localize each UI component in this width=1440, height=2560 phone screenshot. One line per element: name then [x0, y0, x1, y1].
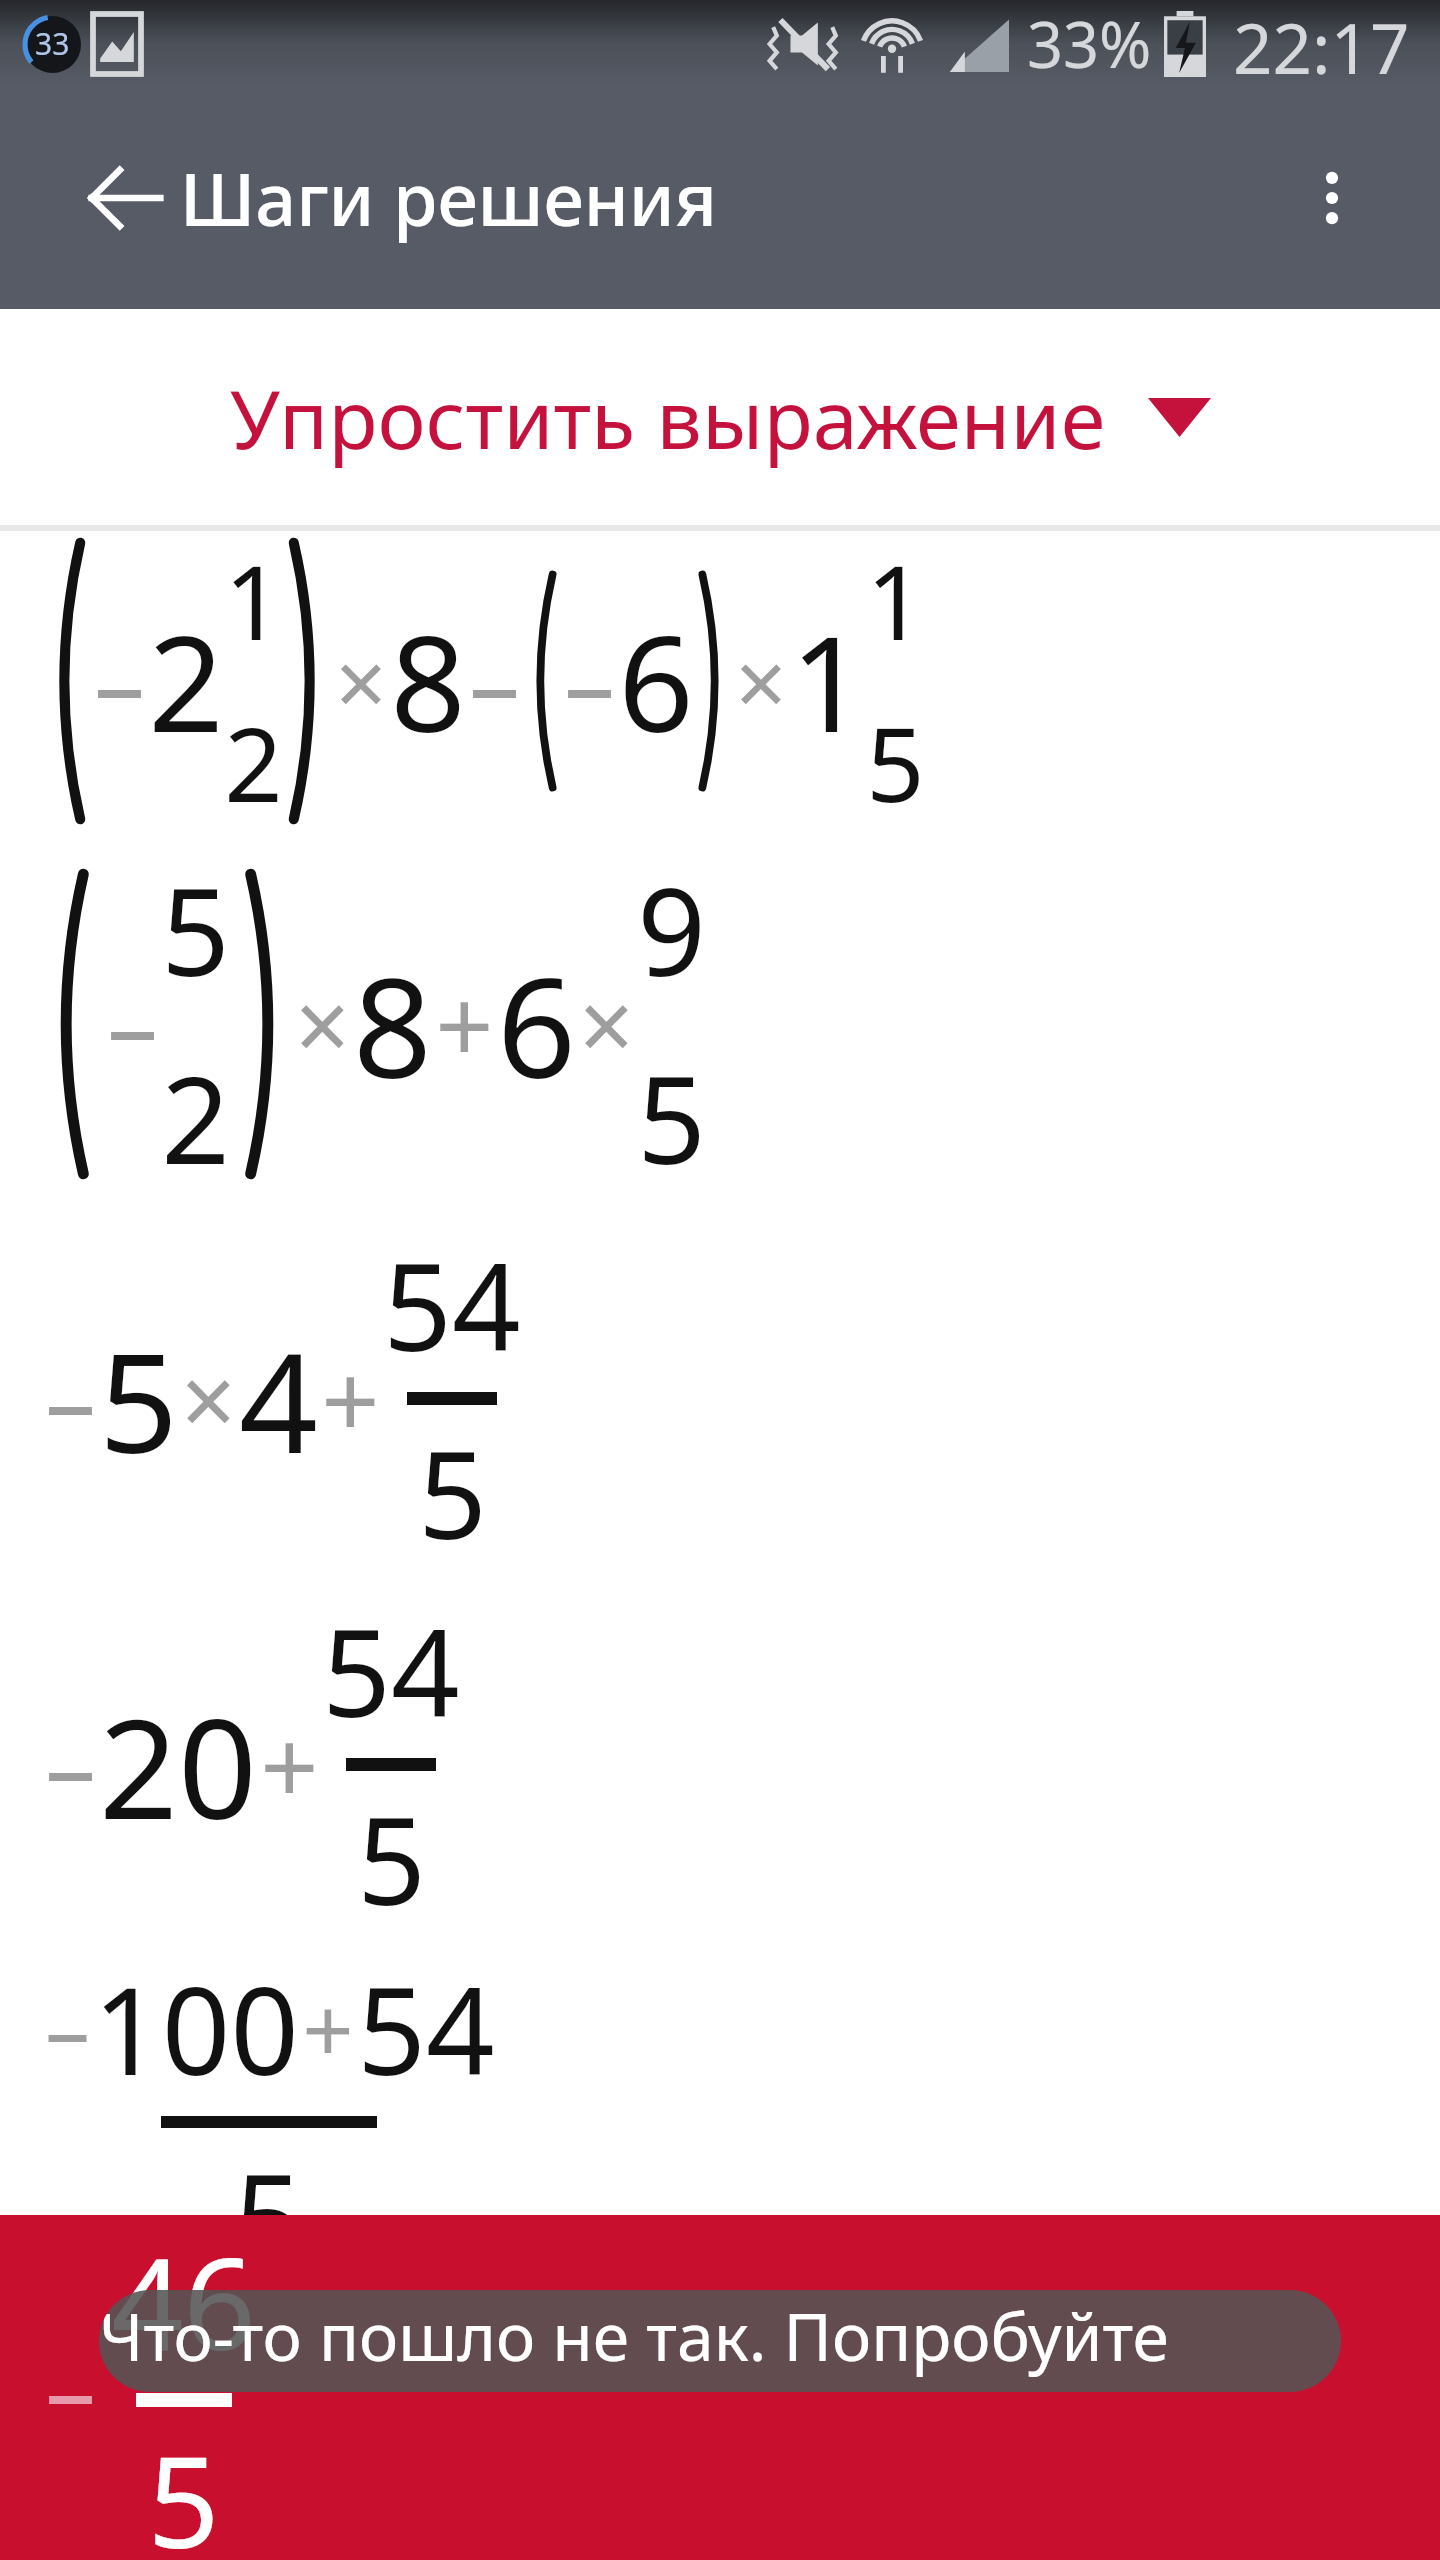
staticText: 5	[637, 1036, 706, 1199]
staticText: 1	[866, 531, 925, 670]
staticText: 6	[618, 591, 694, 771]
staticText: 6	[497, 930, 576, 1118]
staticText: –	[45, 1967, 90, 2090]
staticText: 5	[161, 848, 230, 1011]
staticText: 5	[147, 2413, 220, 2560]
staticText: –	[107, 954, 158, 1093]
staticText: +	[321, 1329, 380, 1468]
staticText: 33	[35, 23, 70, 64]
button[interactable]: –	[0, 831, 1440, 1215]
staticText: 1	[224, 531, 283, 670]
staticText: 33%	[1027, 1, 1152, 87]
staticText: 8	[353, 930, 432, 1118]
staticText: 100	[93, 1947, 299, 2110]
staticText: 5	[866, 693, 925, 831]
button[interactable]: Упростить выражение	[0, 309, 1440, 525]
staticText: 54	[357, 1947, 495, 2110]
staticText: ×	[579, 958, 634, 1089]
staticText: 20	[99, 1671, 257, 1859]
staticText: 54	[383, 1223, 521, 1386]
staticText: 1	[790, 591, 866, 771]
button[interactable]: –	[0, 1581, 1440, 1947]
staticText: Что-то пошло не так. Попробуйте позже.	[99, 2290, 1341, 2392]
staticText: 8	[390, 591, 466, 771]
staticText: ×	[295, 958, 350, 1089]
staticText: 2	[148, 591, 224, 771]
button[interactable]: –	[0, 1947, 1440, 2215]
staticText: ×	[735, 620, 787, 743]
staticText: ×	[335, 620, 387, 743]
staticText: –	[564, 612, 615, 751]
staticText: 5	[99, 1305, 178, 1493]
staticText: –	[94, 612, 145, 751]
staticText: –	[469, 612, 520, 751]
staticText: Упростить выражение	[230, 362, 1106, 472]
staticText: ×	[181, 1333, 236, 1464]
button[interactable]: –	[0, 2215, 1440, 2560]
staticText: 5	[418, 1411, 487, 1574]
staticText: 22:17	[1233, 0, 1410, 87]
staticText: 5	[234, 2134, 303, 2215]
staticText: 4	[239, 1305, 318, 1493]
staticText: +	[302, 1967, 354, 2090]
staticText: +	[435, 954, 494, 1093]
staticText: –	[45, 2318, 96, 2457]
staticText: –	[45, 1329, 96, 1468]
staticText: +	[260, 1695, 319, 1834]
staticText: 46	[111, 2215, 256, 2387]
staticText: 5	[357, 1777, 426, 1940]
staticText: 9	[637, 848, 706, 1011]
staticText: –	[45, 1695, 96, 1834]
button[interactable]: Back	[42, 114, 210, 282]
staticText: Шаги решения	[180, 149, 717, 247]
button[interactable]: –	[0, 531, 1440, 831]
button[interactable]: More options	[1248, 114, 1416, 282]
button[interactable]: –	[0, 1215, 1440, 1581]
staticText: 54	[322, 1589, 460, 1752]
staticText: 2	[224, 693, 283, 831]
staticText: 2	[161, 1036, 230, 1199]
